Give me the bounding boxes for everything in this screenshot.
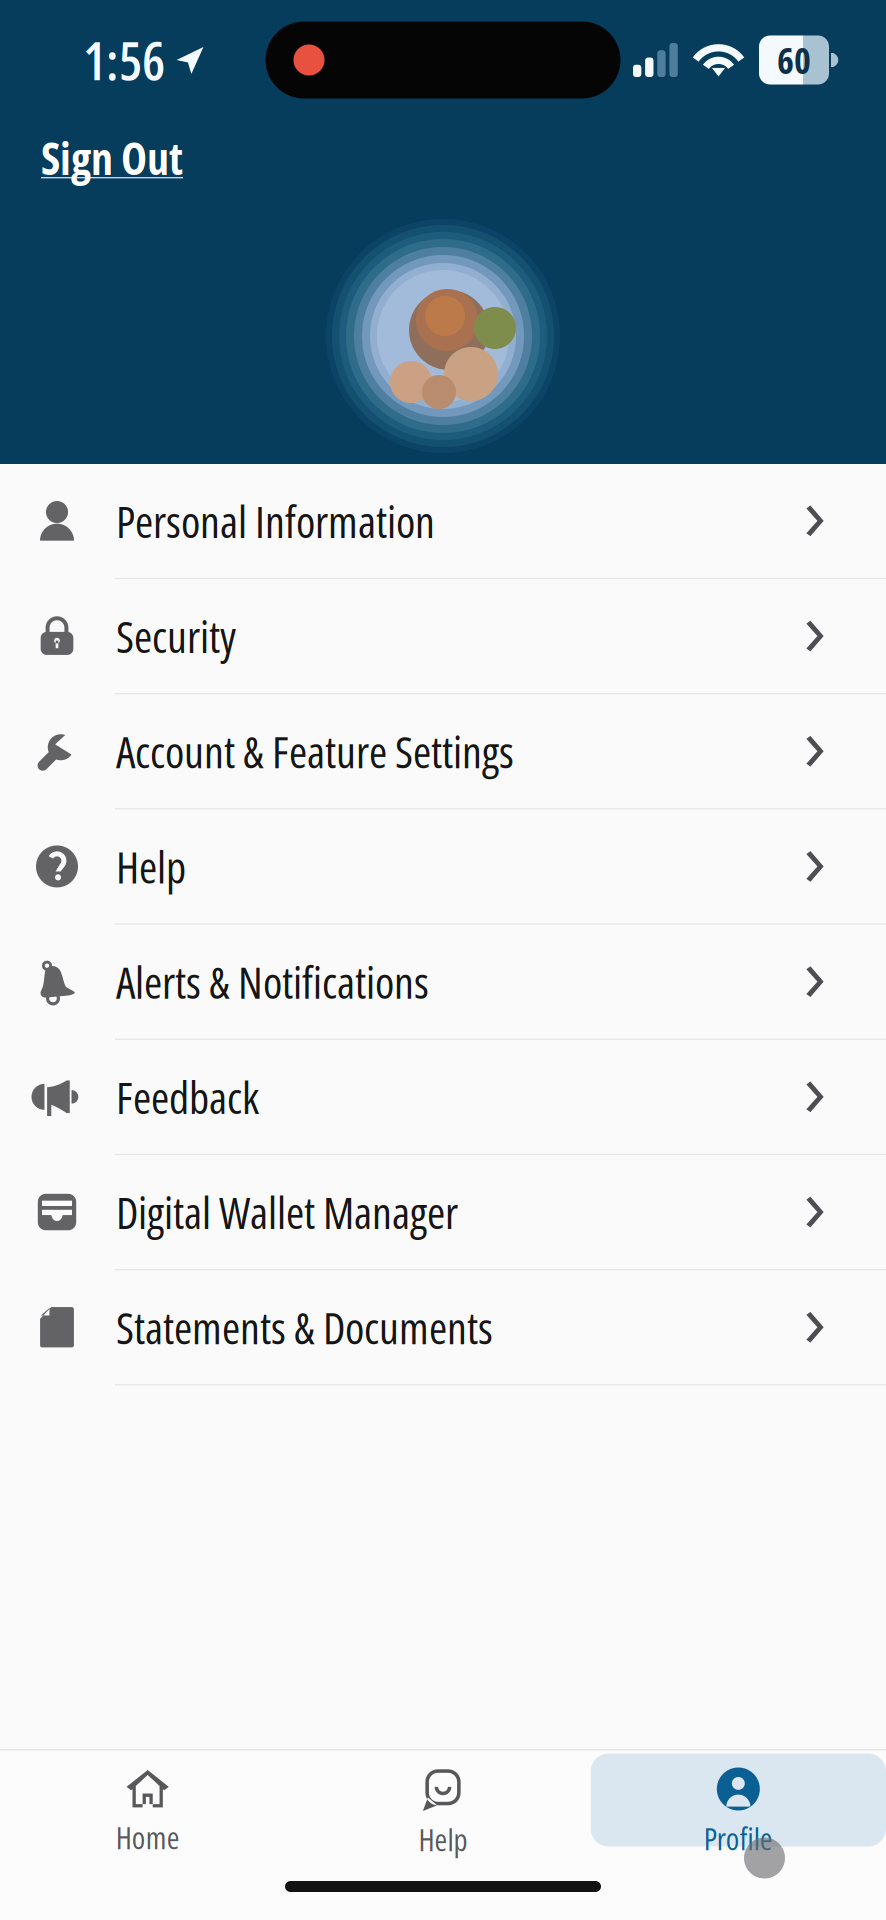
button[interactable]: Digital Wallet Manager [0,1155,886,1270]
button[interactable]: Help [295,1753,591,1846]
button[interactable]: Security [0,579,886,694]
button[interactable]: Account & Feature Settings [0,694,886,810]
staticText: Sign Out [41,128,183,188]
button[interactable]: Help [0,810,886,925]
button[interactable]: Profile [591,1753,886,1846]
staticText: Statements & Documents [116,1297,493,1357]
staticText: Alerts & Notifications [116,952,429,1012]
staticText: Security [116,606,236,666]
staticText: Home [116,1816,180,1858]
staticText: Help [418,1818,467,1860]
staticText: 1:56 [83,25,165,95]
button[interactable]: Personal Information [0,464,886,579]
button[interactable]: Feedback [0,1040,886,1155]
staticText: Account & Feature Settings [116,721,514,781]
staticText: 60 [777,35,811,84]
staticText: Feedback [116,1067,259,1127]
staticText: Digital Wallet Manager [116,1182,458,1242]
button[interactable]: Home [0,1753,295,1846]
staticText: Profile [704,1817,773,1859]
button[interactable]: Statements & Documents [0,1270,886,1386]
button[interactable]: Alerts & Notifications [0,925,886,1040]
button[interactable]: Sign Out [0,118,207,198]
staticText: Personal Information [116,491,435,551]
staticText: Help [116,836,186,896]
